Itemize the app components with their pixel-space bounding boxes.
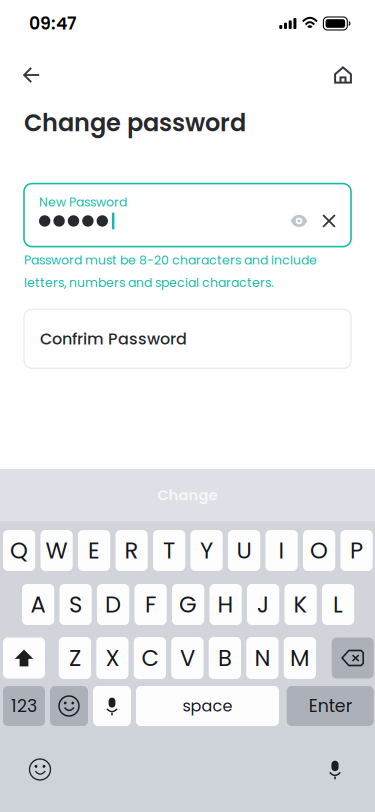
staticText: N <box>254 642 270 674</box>
button[interactable]: U <box>228 530 260 571</box>
staticText: Q <box>10 535 28 566</box>
staticText: New Password <box>39 194 127 211</box>
button[interactable]: Z <box>59 637 91 679</box>
staticText: R <box>125 535 139 566</box>
button[interactable]: Home <box>308 53 352 97</box>
staticText: H <box>218 589 234 620</box>
staticText: T <box>163 535 175 566</box>
staticText: Y <box>200 535 213 566</box>
button[interactable]: Clear <box>315 210 343 232</box>
staticText: L <box>333 589 343 620</box>
button[interactable]: M <box>284 637 316 679</box>
button[interactable]: 123 <box>3 686 45 726</box>
staticText: X <box>105 642 119 674</box>
staticText: space <box>182 695 232 717</box>
button[interactable]: I <box>265 530 298 571</box>
button[interactable]: Emoji <box>50 686 88 726</box>
button[interactable]: A <box>22 584 54 625</box>
button[interactable]: Dictate <box>315 749 355 789</box>
button[interactable]: F <box>134 584 167 625</box>
button[interactable]: B <box>209 637 241 679</box>
staticText: W <box>46 535 68 566</box>
button[interactable]: W <box>40 530 73 571</box>
staticText: K <box>294 589 308 620</box>
button[interactable]: Enter <box>284 686 374 726</box>
button[interactable]: S <box>59 584 92 625</box>
staticText: Change password <box>24 106 246 140</box>
staticText: A <box>31 589 46 620</box>
staticText: 09:47 <box>29 11 76 36</box>
button[interactable]: O <box>303 530 335 571</box>
button[interactable]: Back <box>23 53 67 97</box>
button[interactable]: Q <box>3 530 35 571</box>
staticText: P <box>350 535 363 566</box>
staticText: G <box>179 589 197 620</box>
button[interactable]: X <box>96 637 128 679</box>
button[interactable]: K <box>284 584 317 625</box>
staticText: V <box>180 642 195 674</box>
button[interactable]: J <box>247 584 279 625</box>
button[interactable]: Emoji <box>20 749 60 789</box>
button[interactable]: D <box>97 584 129 625</box>
staticText: Change <box>157 485 217 505</box>
staticText: B <box>218 642 232 674</box>
staticText: M <box>290 642 310 674</box>
staticText: I <box>279 535 285 566</box>
staticText: S <box>69 589 82 620</box>
button[interactable]: Shift <box>3 637 45 678</box>
staticText: Password must be 8-20 characters and inc… <box>24 252 317 269</box>
button[interactable]: T <box>153 530 185 571</box>
button[interactable]: V <box>171 637 203 679</box>
staticText: F <box>145 589 156 620</box>
button[interactable]: Delete <box>332 637 374 678</box>
staticText: 123 <box>11 694 37 718</box>
button[interactable]: Show password <box>286 210 312 232</box>
button[interactable]: L <box>322 584 354 625</box>
staticText: E <box>88 535 100 566</box>
button[interactable]: G <box>172 584 204 625</box>
staticText: O <box>310 535 328 566</box>
button[interactable]: C <box>134 637 166 679</box>
button[interactable]: Y <box>190 530 223 571</box>
button[interactable]: N <box>246 637 278 679</box>
staticText: letters, numbers and special characters. <box>24 274 274 291</box>
staticText: U <box>237 535 252 566</box>
button[interactable]: P <box>340 530 373 571</box>
button[interactable]: H <box>209 584 242 625</box>
staticText: Enter <box>309 694 352 718</box>
button[interactable]: E <box>78 530 110 571</box>
staticText: J <box>257 589 269 620</box>
button[interactable]: space <box>136 686 279 726</box>
button[interactable]: Dictate <box>93 686 131 726</box>
staticText: Confrim Password <box>40 328 187 350</box>
staticText: Z <box>69 642 81 674</box>
staticText: D <box>105 589 121 620</box>
staticText: C <box>141 642 158 674</box>
button[interactable]: R <box>115 530 148 571</box>
